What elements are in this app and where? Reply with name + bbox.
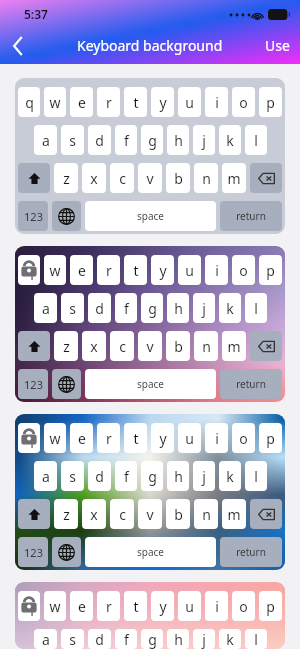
button[interactable]: g [141, 629, 163, 649]
button[interactable]: f [115, 629, 137, 649]
button[interactable]: l [245, 125, 267, 155]
button[interactable]: l [245, 629, 267, 649]
button[interactable]: a [34, 629, 57, 649]
button[interactable]: g [141, 461, 163, 491]
button[interactable]: j [193, 461, 215, 491]
button[interactable]: t [124, 591, 147, 621]
button[interactable]: o [232, 87, 255, 117]
button[interactable]: h [167, 293, 189, 323]
button[interactable]: e [70, 423, 93, 453]
button[interactable]: r [97, 423, 120, 453]
button[interactable]: l [245, 293, 267, 323]
button[interactable]: y [151, 87, 174, 117]
button[interactable]: n [194, 331, 218, 361]
button[interactable]: r [97, 255, 120, 285]
button[interactable]: h [167, 461, 189, 491]
button[interactable]: return [220, 201, 282, 231]
button[interactable]: 123 [18, 537, 48, 567]
button[interactable]: y [151, 423, 174, 453]
button[interactable]: w [44, 591, 66, 621]
button[interactable]: c [110, 499, 134, 529]
button[interactable]: s [61, 125, 84, 155]
button[interactable]: p [259, 423, 282, 453]
button[interactable]: g [141, 125, 163, 155]
button[interactable]: i [205, 591, 228, 621]
button[interactable]: u [178, 591, 201, 621]
button[interactable]: v [138, 331, 162, 361]
button[interactable]: m [222, 163, 246, 193]
button[interactable]: a [34, 461, 57, 491]
button[interactable]: return [220, 537, 282, 567]
button[interactable]: q [15, 582, 285, 649]
button[interactable]: c [110, 331, 134, 361]
button[interactable]: w [44, 87, 66, 117]
button[interactable]: s [61, 629, 84, 649]
button[interactable]: e [70, 255, 93, 285]
button[interactable]: t [124, 255, 147, 285]
button[interactable]: x [82, 331, 106, 361]
button[interactable]: t [124, 87, 147, 117]
button[interactable]: c [110, 163, 134, 193]
button[interactable]: b [166, 331, 190, 361]
button[interactable]: g [141, 293, 163, 323]
button[interactable]: m [222, 499, 246, 529]
button[interactable]: f [115, 461, 137, 491]
button[interactable]: b [166, 163, 190, 193]
button[interactable]: z [54, 163, 78, 193]
button[interactable]: h [167, 125, 189, 155]
button[interactable]: x [82, 163, 106, 193]
button[interactable]: q [15, 246, 285, 402]
button[interactable]: p [259, 591, 282, 621]
button[interactable]: j [193, 125, 215, 155]
button[interactable]: o [232, 255, 255, 285]
button[interactable]: q [15, 414, 285, 570]
button[interactable]: space [85, 537, 216, 567]
button[interactable]: a [34, 125, 57, 155]
button[interactable] [18, 163, 50, 193]
button[interactable]: w [44, 423, 66, 453]
button[interactable]: q [18, 423, 40, 453]
button[interactable]: v [138, 499, 162, 529]
button[interactable]: u [178, 255, 201, 285]
button[interactable]: space [85, 369, 216, 399]
button[interactable]: h [167, 629, 189, 649]
button[interactable]: y [151, 591, 174, 621]
button[interactable]: n [194, 499, 218, 529]
button[interactable]: f [115, 125, 137, 155]
button[interactable]: b [166, 499, 190, 529]
button[interactable]: s [61, 461, 84, 491]
button[interactable]: s [61, 293, 84, 323]
button[interactable]: k [219, 293, 241, 323]
button[interactable]: n [194, 163, 218, 193]
button[interactable]: Back [0, 28, 36, 63]
button[interactable]: r [97, 591, 120, 621]
button[interactable]: d [88, 125, 111, 155]
button[interactable]: q [15, 78, 285, 234]
button[interactable] [250, 331, 282, 361]
button[interactable]: q [18, 255, 40, 285]
button[interactable] [52, 369, 81, 399]
button[interactable] [250, 163, 282, 193]
button[interactable]: f [115, 293, 137, 323]
button[interactable]: v [138, 163, 162, 193]
button[interactable]: d [88, 461, 111, 491]
button[interactable]: k [219, 629, 241, 649]
button[interactable]: d [88, 293, 111, 323]
button[interactable]: l [245, 461, 267, 491]
button[interactable]: m [222, 331, 246, 361]
button[interactable]: q [18, 87, 40, 117]
button[interactable]: i [205, 423, 228, 453]
button[interactable]: k [219, 461, 241, 491]
button[interactable]: o [232, 423, 255, 453]
button[interactable] [250, 499, 282, 529]
button[interactable]: 123 [18, 201, 48, 231]
button[interactable]: a [34, 293, 57, 323]
button[interactable] [18, 331, 50, 361]
button[interactable]: space [85, 201, 216, 231]
button[interactable]: j [193, 293, 215, 323]
button[interactable]: p [259, 87, 282, 117]
button[interactable]: e [70, 591, 93, 621]
button[interactable]: q [18, 591, 40, 621]
button[interactable]: r [97, 87, 120, 117]
button[interactable]: x [82, 499, 106, 529]
